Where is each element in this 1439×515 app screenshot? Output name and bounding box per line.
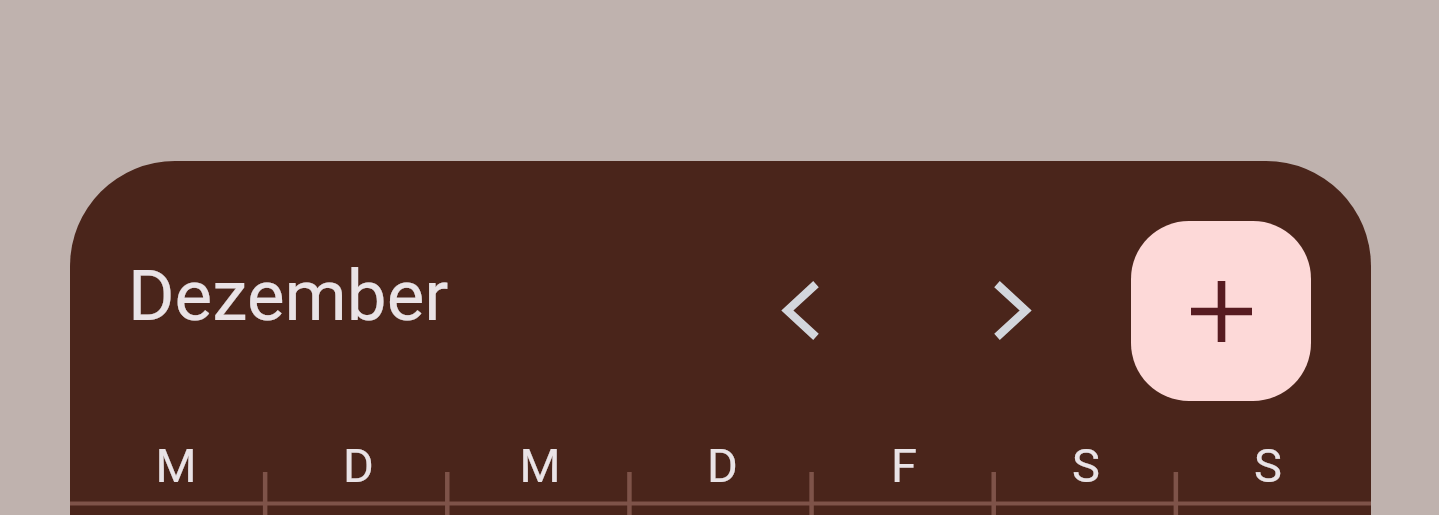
button[interactable]: Previous month — [755, 267, 841, 353]
staticText: D — [707, 438, 738, 488]
button[interactable]: Add event — [1131, 221, 1311, 401]
staticText: M — [519, 438, 561, 488]
button[interactable]: Next month — [971, 267, 1057, 353]
staticText: D — [343, 438, 374, 488]
staticText: S — [1072, 438, 1100, 488]
staticText: S — [1254, 438, 1282, 488]
staticText: M — [155, 438, 197, 488]
staticText: F — [891, 438, 917, 488]
staticText: Dezember — [128, 254, 449, 337]
